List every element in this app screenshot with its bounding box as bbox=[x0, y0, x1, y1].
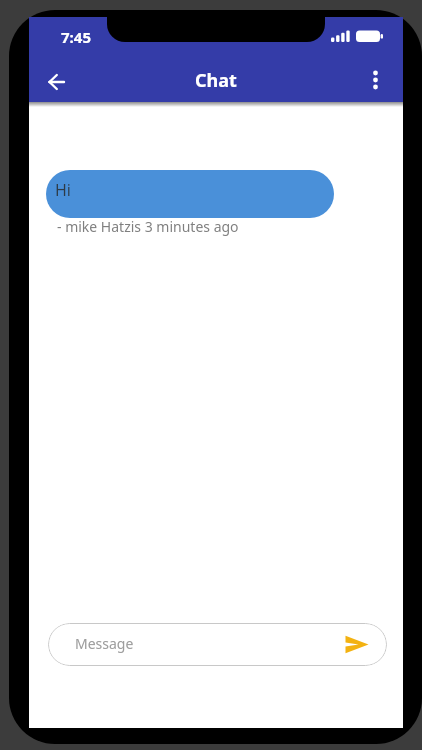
staticText: Hi bbox=[55, 179, 71, 201]
staticText: 7:45 bbox=[61, 27, 91, 47]
button[interactable] bbox=[341, 630, 373, 658]
button[interactable] bbox=[40, 66, 74, 98]
staticText: - mike Hatzis 3 minutes ago bbox=[57, 217, 239, 236]
staticText: Message bbox=[75, 634, 134, 653]
button[interactable] bbox=[48, 623, 387, 666]
staticText: Chat bbox=[195, 68, 237, 93]
button[interactable] bbox=[46, 170, 334, 218]
button[interactable] bbox=[360, 64, 392, 96]
